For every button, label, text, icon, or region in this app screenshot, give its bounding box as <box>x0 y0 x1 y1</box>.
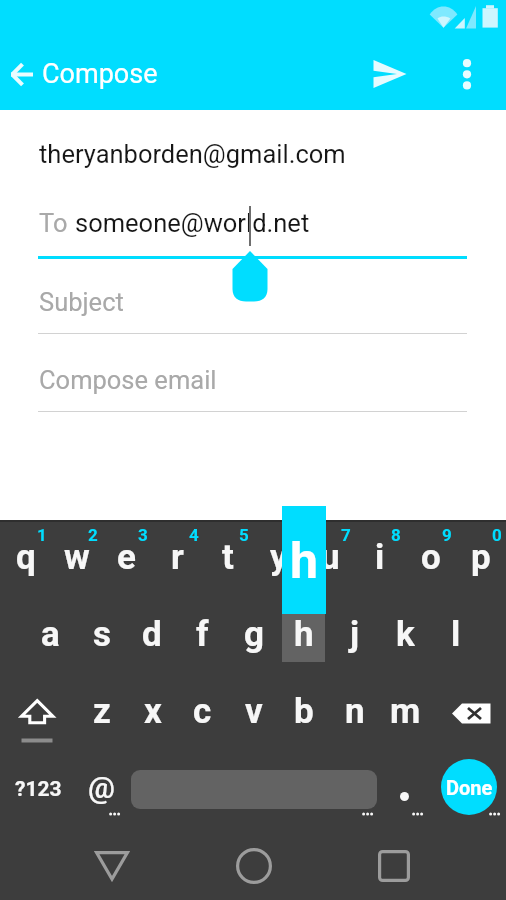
staticText: w <box>64 537 90 578</box>
staticText: m <box>390 691 421 732</box>
staticText: 9 <box>442 525 452 545</box>
button[interactable]: Compose <box>42 58 158 90</box>
staticText: To <box>39 208 68 238</box>
staticText: d <box>142 614 162 655</box>
button[interactable]: s <box>76 600 127 675</box>
button[interactable]: g <box>228 600 279 675</box>
button[interactable]: 5 <box>202 520 253 595</box>
button[interactable]: Send <box>357 41 423 107</box>
staticText: a <box>41 614 60 655</box>
staticText: h <box>294 614 314 655</box>
button[interactable]: 7 <box>304 520 355 595</box>
staticText: someone@world.net <box>75 208 310 238</box>
staticText: 0 <box>492 525 502 545</box>
staticText: Subject <box>39 287 124 317</box>
staticText: 1 <box>37 525 47 545</box>
staticText: 2 <box>88 525 98 545</box>
button[interactable]: n <box>329 678 380 753</box>
staticText: 4 <box>189 525 199 545</box>
staticText: y <box>270 537 288 578</box>
staticText: 8 <box>391 525 401 545</box>
button[interactable]: Shift <box>0 695 72 765</box>
button[interactable]: Compose email <box>38 360 467 411</box>
staticText: 7 <box>341 525 351 545</box>
button[interactable]: 4 <box>152 520 203 595</box>
staticText: u <box>320 537 340 578</box>
button[interactable]: l <box>430 600 481 675</box>
button[interactable]: 2 <box>51 520 102 595</box>
staticText: t <box>222 537 234 578</box>
button[interactable]: d <box>126 600 177 675</box>
staticText: c <box>193 691 212 732</box>
button[interactable]: m <box>380 678 431 753</box>
button[interactable]: j <box>329 600 380 675</box>
staticText: ?123 <box>15 777 62 802</box>
button[interactable]: 1 <box>0 520 51 595</box>
staticText: i <box>375 537 385 578</box>
staticText: l <box>451 614 461 655</box>
button[interactable]: 6 <box>253 520 304 595</box>
button[interactable]: To <box>38 200 467 256</box>
staticText: z <box>93 691 111 732</box>
button[interactable]: @ <box>76 756 126 818</box>
staticText: g <box>244 614 264 655</box>
button[interactable]: v <box>228 678 279 753</box>
button[interactable]: z <box>76 678 127 753</box>
staticText: x <box>144 691 162 732</box>
button[interactable]: a <box>25 600 76 675</box>
staticText: 6 <box>290 525 300 545</box>
staticText: j <box>350 614 360 655</box>
button[interactable]: theryanborden@gmail.com <box>39 139 346 169</box>
staticText: n <box>345 691 365 732</box>
staticText: b <box>294 691 314 732</box>
staticText: 3 <box>138 525 148 545</box>
button[interactable]: 0 <box>455 520 506 595</box>
button[interactable]: c <box>177 678 228 753</box>
staticText: o <box>421 537 441 578</box>
staticText: q <box>16 537 36 578</box>
button[interactable]: Subject <box>38 282 467 332</box>
staticText: Compose email <box>39 365 217 395</box>
button[interactable]: Home <box>206 832 301 900</box>
button[interactable]: Delete <box>440 678 502 748</box>
staticText: p <box>471 537 491 578</box>
button[interactable]: Navigate up <box>0 41 45 107</box>
staticText: s <box>93 614 111 655</box>
button[interactable] <box>382 765 427 827</box>
button[interactable]: 9 <box>405 520 456 595</box>
button[interactable]: h <box>278 600 329 675</box>
button[interactable]: Recent apps <box>346 832 441 900</box>
button[interactable]: Back <box>64 832 159 900</box>
staticText: r <box>171 537 184 578</box>
button[interactable]: b <box>278 678 329 753</box>
staticText: k <box>396 614 415 655</box>
button[interactable]: More options <box>440 41 494 107</box>
button[interactable]: x <box>127 678 178 753</box>
button[interactable]: 8 <box>354 520 405 595</box>
button[interactable]: 3 <box>101 520 152 595</box>
staticText: h <box>290 532 319 591</box>
button[interactable]: f <box>177 600 228 675</box>
staticText: 5 <box>239 525 249 545</box>
staticText: e <box>117 537 136 578</box>
staticText: v <box>245 691 263 732</box>
button[interactable]: ?123 <box>8 758 68 820</box>
staticText: f <box>196 614 209 655</box>
staticText: Done <box>446 776 493 799</box>
button[interactable]: k <box>380 600 431 675</box>
button[interactable]: Space <box>131 770 377 809</box>
staticText: @ <box>88 770 115 805</box>
button[interactable]: Done <box>441 759 497 815</box>
